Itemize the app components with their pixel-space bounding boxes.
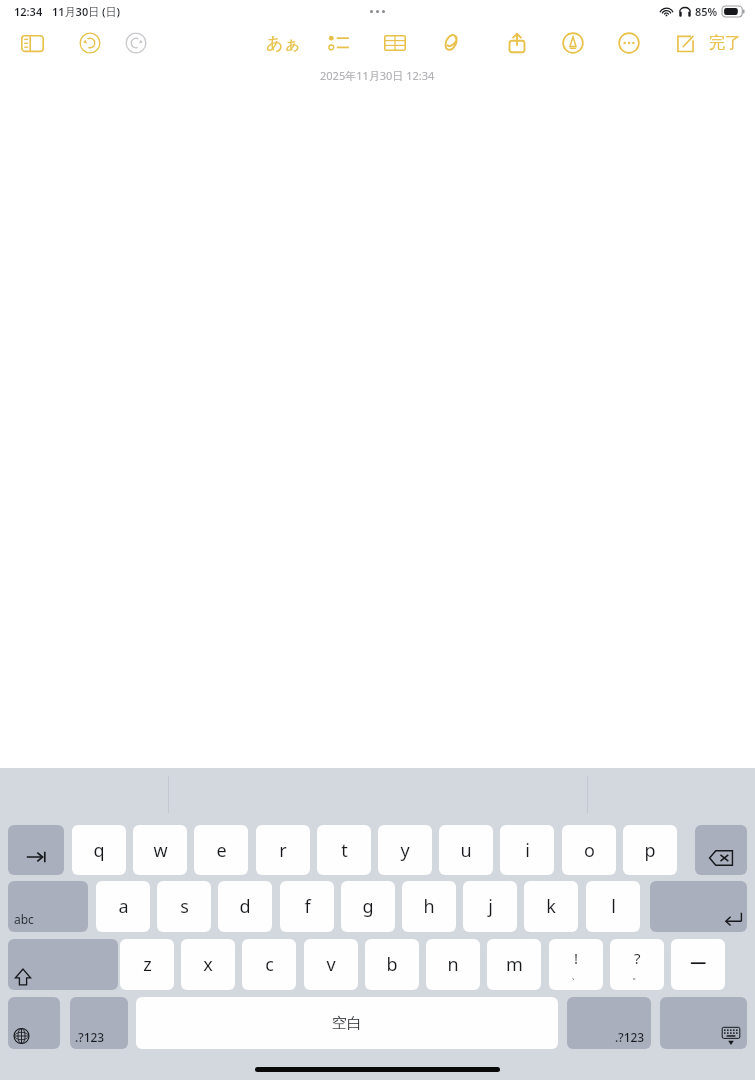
staticText: abc [14,911,34,927]
staticText: 完了 [709,33,741,53]
staticText: y [400,838,410,863]
button[interactable]: c [242,939,296,990]
staticText: ー [689,953,707,976]
button[interactable]: 完了 [709,23,741,63]
button[interactable] [8,939,118,990]
button[interactable] [660,997,747,1049]
staticText: r [279,838,287,863]
button[interactable]: ! [549,939,603,990]
button[interactable]: s [157,881,211,932]
button[interactable]: More [607,23,651,63]
staticText: t [341,838,348,863]
button[interactable]: Sidebar [10,23,54,63]
button[interactable]: Undo [68,23,112,63]
button[interactable]: m [487,939,541,990]
button[interactable]: n [426,939,480,990]
button[interactable]: d [218,881,272,932]
button[interactable] [695,825,747,875]
button[interactable]: Attach [429,23,473,63]
button[interactable]: t [317,825,371,875]
staticText: s [180,894,189,919]
button[interactable]: q [72,825,126,875]
staticText: m [506,952,523,977]
button[interactable]: h [402,881,456,932]
button[interactable]: .?123 [567,997,651,1049]
button[interactable]: abc [8,881,88,932]
button[interactable]: ? [610,939,664,990]
button[interactable]: Table [373,23,417,63]
button[interactable]: v [304,939,358,990]
staticText: n [447,952,459,977]
staticText: c [265,952,274,977]
button[interactable]: ー [671,939,725,990]
button[interactable]: i [500,825,554,875]
staticText: h [423,894,435,919]
staticText: a [118,894,129,919]
staticText: p [644,838,656,863]
staticText: e [216,838,227,863]
button[interactable]: p [623,825,677,875]
staticText: b [386,952,398,977]
button[interactable]: x [181,939,235,990]
staticText: o [584,838,595,863]
button[interactable]: New note [663,23,707,63]
button[interactable]: Markup [551,23,595,63]
staticText: z [143,952,152,977]
button[interactable] [8,997,60,1049]
button[interactable]: o [562,825,616,875]
staticText: v [326,952,336,977]
button[interactable]: z [120,939,174,990]
button[interactable] [8,825,64,875]
button[interactable]: e [194,825,248,875]
staticText: u [460,838,472,863]
staticText: 85% [695,4,718,19]
staticText: ? [634,948,641,968]
button[interactable]: a [96,881,150,932]
button[interactable]: r [256,825,310,875]
staticText: 12:34 [14,4,43,19]
button[interactable]: j [463,881,517,932]
button[interactable]: u [439,825,493,875]
staticText: l [611,894,616,919]
staticText: ! [574,948,579,968]
staticText: g [362,894,374,919]
staticText: d [239,894,251,919]
button[interactable]: g [341,881,395,932]
staticText: i [525,838,530,863]
staticText: k [546,894,556,919]
button[interactable]: .?123 [70,997,128,1049]
button[interactable]: Checklist [317,23,361,63]
staticText: 空白 [332,1014,362,1033]
button[interactable]: Redo [114,23,158,63]
button[interactable]: w [133,825,187,875]
staticText: q [93,838,105,863]
staticText: .?123 [75,1029,105,1045]
staticText: f [304,894,311,919]
staticText: あぁ [266,33,301,54]
button[interactable]: 空白 [136,997,558,1049]
button[interactable]: Share [495,23,539,63]
button[interactable]: Format text [261,23,305,63]
button[interactable]: l [586,881,640,932]
staticText: 。 [632,969,642,982]
button[interactable]: f [280,881,334,932]
staticText: 11月30日 (日) [52,4,121,19]
button[interactable] [650,881,747,932]
staticText: .?123 [615,1029,645,1045]
staticText: j [488,894,493,919]
staticText: w [153,838,168,863]
staticText: 、 [571,969,581,982]
button[interactable]: b [365,939,419,990]
button[interactable]: k [524,881,578,932]
button[interactable]: y [378,825,432,875]
staticText: x [203,952,213,977]
staticText: 2025年11月30日 12:34 [320,68,435,83]
